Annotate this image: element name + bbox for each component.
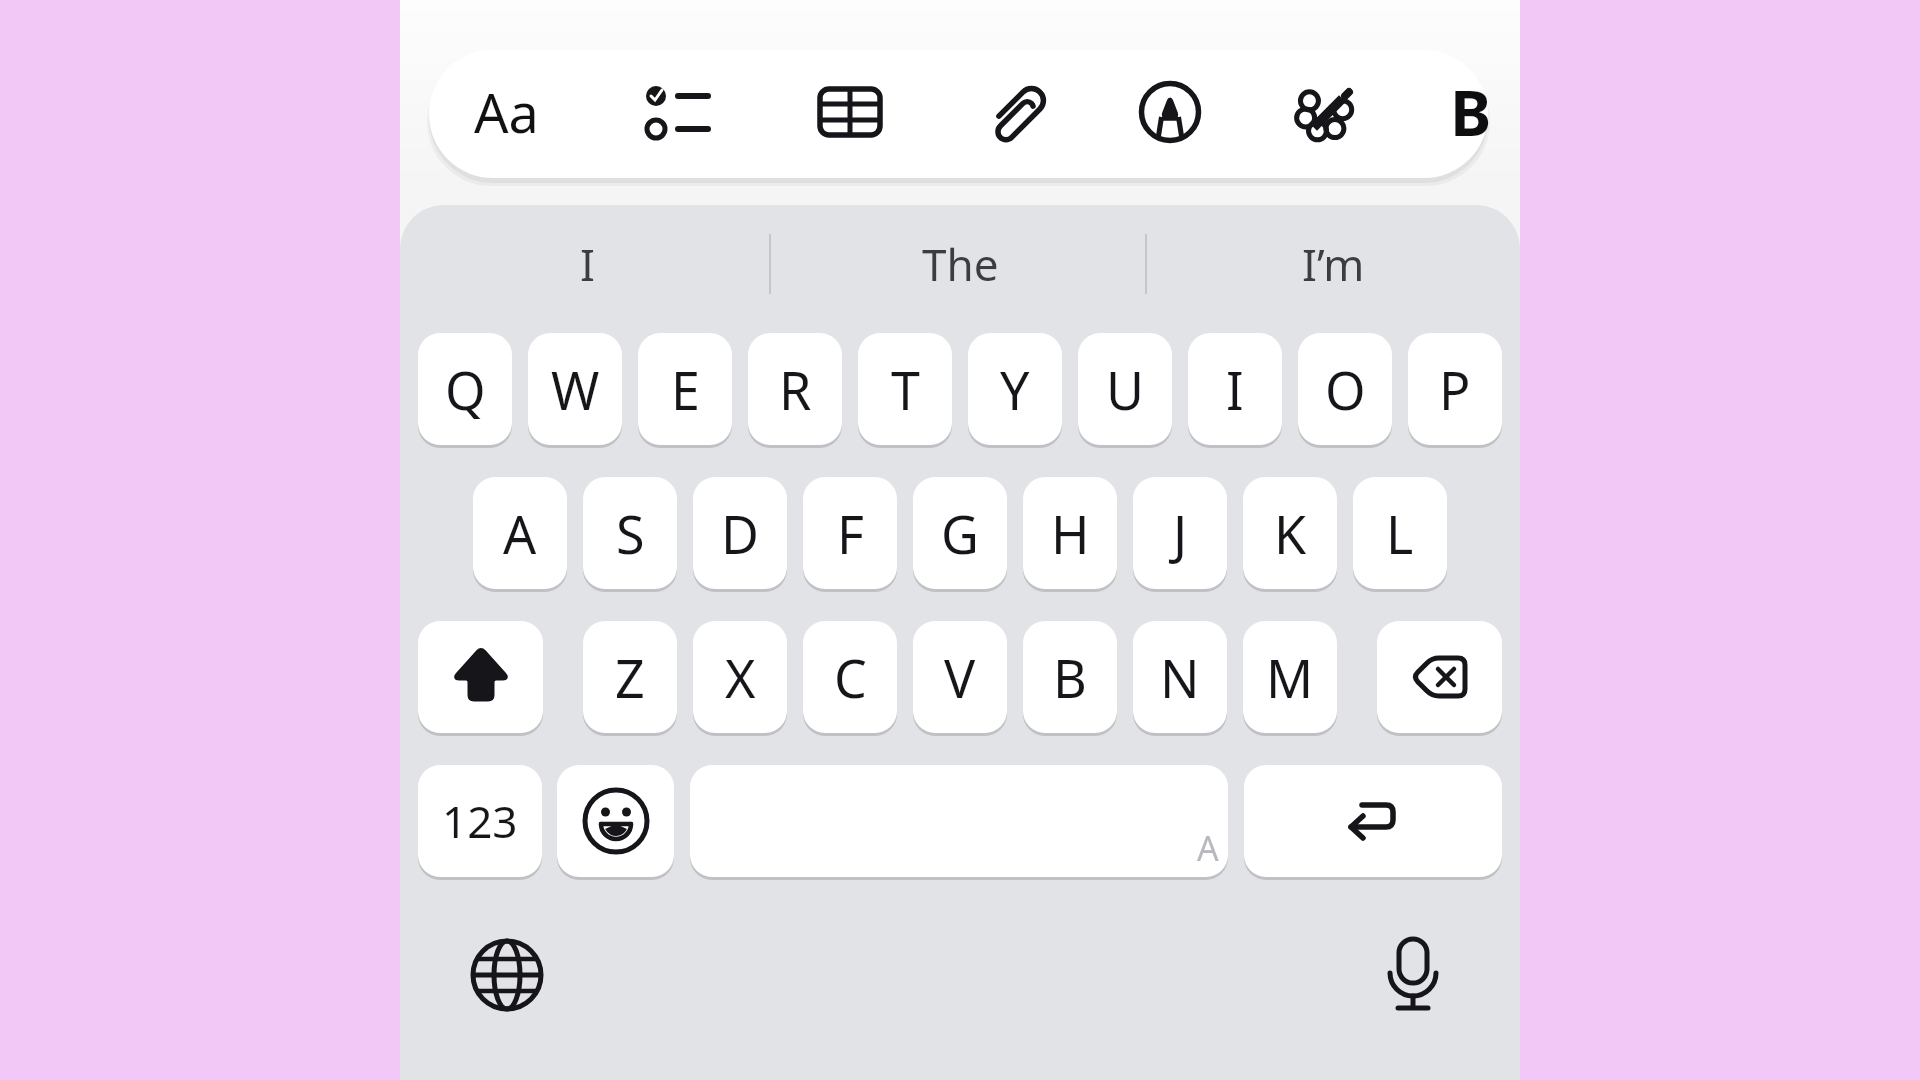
staticText: 123: [442, 791, 518, 851]
staticText: A: [1197, 825, 1219, 871]
staticText: W: [551, 354, 600, 425]
staticText: L: [1386, 498, 1414, 569]
staticText: S: [616, 498, 645, 569]
staticText: P: [1439, 354, 1471, 425]
staticText: H: [1051, 498, 1090, 569]
staticText: Z: [615, 642, 645, 713]
staticText: The: [922, 234, 999, 294]
staticText: I’m: [1302, 234, 1365, 294]
staticText: G: [941, 498, 979, 569]
staticText: X: [725, 642, 756, 713]
staticText: E: [671, 354, 700, 425]
staticText: A: [503, 498, 537, 569]
staticText: Q: [445, 354, 486, 425]
staticText: Y: [1000, 354, 1030, 425]
staticText: V: [944, 642, 976, 713]
staticText: B: [1053, 642, 1087, 713]
staticText: R: [779, 354, 812, 425]
staticText: O: [1325, 354, 1366, 425]
staticText: B: [1450, 70, 1492, 154]
staticText: F: [837, 498, 864, 569]
staticText: M: [1266, 642, 1314, 713]
staticText: U: [1106, 354, 1145, 425]
staticText: D: [721, 498, 759, 569]
staticText: N: [1160, 642, 1200, 713]
staticText: J: [1173, 498, 1188, 569]
staticText: T: [891, 354, 920, 425]
staticText: I: [1226, 354, 1244, 425]
staticText: I: [580, 234, 595, 294]
staticText: C: [834, 642, 867, 713]
staticText: Aa: [474, 75, 539, 149]
staticText: K: [1274, 498, 1307, 569]
